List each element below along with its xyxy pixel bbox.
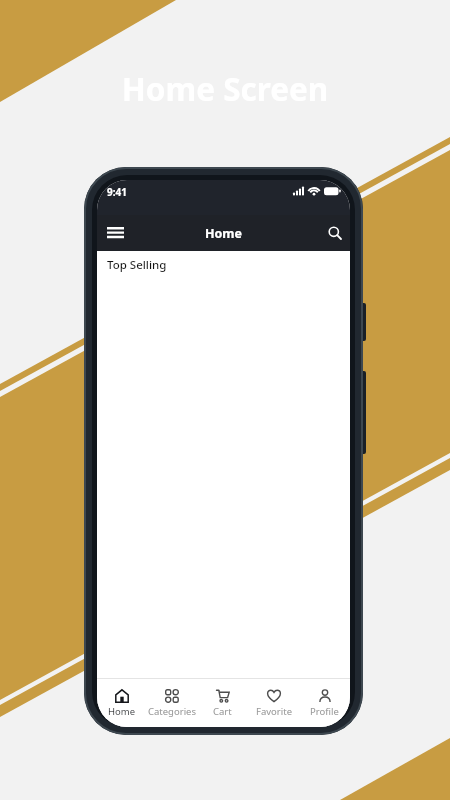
button[interactable]: [102, 220, 128, 246]
button[interactable]: Home: [97, 679, 147, 727]
staticText: 9:41: [107, 185, 127, 199]
button[interactable]: [323, 221, 347, 245]
button[interactable]: Categories: [147, 679, 197, 727]
staticText: Categories: [148, 705, 196, 718]
staticText: Home Screen: [0, 67, 450, 110]
button[interactable]: Favorite: [248, 679, 299, 727]
staticText: Top Selling: [107, 257, 167, 273]
staticText: Cart: [213, 705, 232, 718]
button[interactable]: Cart: [197, 679, 248, 727]
button[interactable]: Profile: [299, 679, 350, 727]
staticText: Home: [108, 705, 136, 718]
staticText: Profile: [310, 705, 339, 718]
staticText: Home: [97, 225, 350, 242]
staticText: Favorite: [256, 705, 292, 718]
